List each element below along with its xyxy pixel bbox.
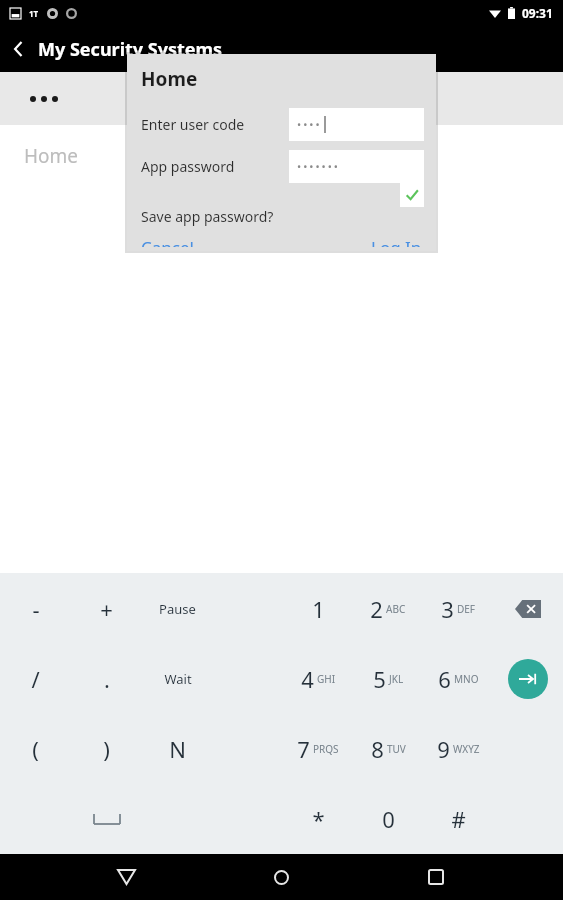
button[interactable]: 0 [353,784,423,854]
staticText: GHI [317,672,336,686]
staticText: Home [24,143,79,169]
button[interactable]: Space [71,784,142,854]
staticText: Log In [371,236,422,247]
button[interactable]: 4 [283,644,353,714]
button[interactable]: 6 [423,644,493,714]
staticText: 8 [371,734,384,764]
other: Enter [508,659,548,699]
button[interactable]: # [423,784,493,854]
staticText: PRQS [313,742,339,756]
button[interactable]: ( [0,714,71,784]
staticText: DEF [457,602,476,616]
other: Space [94,814,120,824]
staticText: JKL [389,672,404,686]
button[interactable]: Enter [493,644,563,714]
button[interactable]: Home [253,854,309,900]
staticText: + [100,594,113,624]
button[interactable]: 1 [283,573,353,644]
button[interactable]: + [71,573,142,644]
button[interactable]: ) [71,714,142,784]
staticText: ABC [386,602,406,616]
button[interactable]: ••••••• [289,150,424,183]
staticText: # [451,804,466,834]
staticText: 0 [382,804,395,834]
button[interactable]: More options [22,77,66,121]
button[interactable]: Pause [142,573,213,644]
staticText: My Security Systems [38,37,223,62]
staticText: 6 [438,664,451,694]
staticText: 09:31 [522,5,553,21]
staticText: 3 [441,594,454,624]
staticText: N [169,734,186,764]
button[interactable]: * [283,784,353,854]
button[interactable]: 2 [353,573,423,644]
button[interactable]: Back [0,26,38,72]
staticText: App password [141,157,235,176]
button[interactable]: Save app password [400,183,424,207]
button[interactable]: Log In [365,232,428,251]
staticText: WXYZ [453,742,480,756]
button[interactable]: Cancel [135,232,200,251]
button[interactable]: 3 [423,573,493,644]
button[interactable]: Delete [493,573,563,644]
button[interactable]: 5 [353,644,423,714]
staticText: •••• [297,117,322,132]
staticText: 5 [373,664,386,694]
staticText: - [32,594,40,624]
staticText: ) [103,734,110,764]
button[interactable]: •••• [289,108,424,141]
staticText: Home [141,66,198,92]
staticText: 2 [370,594,383,624]
staticText: Cancel [141,236,194,247]
staticText: * [312,804,325,834]
staticText: 9 [437,734,450,764]
staticText: 1T [29,8,39,19]
staticText: Wait [164,670,192,688]
button[interactable]: 9 [423,714,493,784]
staticText: 4 [301,664,314,694]
button[interactable]: / [0,644,71,714]
staticText: Pause [159,600,196,618]
staticText: / [31,664,40,694]
staticText: Enter user code [141,115,245,134]
staticText: ( [32,734,39,764]
staticText: Save app password? [141,207,274,226]
button[interactable]: Back [98,854,154,900]
staticText: 1 [312,594,325,624]
button[interactable]: 7 [283,714,353,784]
button[interactable]: - [0,573,71,644]
staticText: 7 [297,734,310,764]
button[interactable]: 8 [353,714,423,784]
button[interactable]: Recents [408,854,464,900]
button[interactable]: N [142,714,213,784]
staticText: . [104,664,110,694]
staticText: ••••••• [297,159,340,174]
other: Delete [515,600,541,618]
staticText: TUV [387,742,406,756]
button[interactable]: Wait [142,644,213,714]
staticText: MNO [454,672,479,686]
button[interactable]: . [71,644,142,714]
